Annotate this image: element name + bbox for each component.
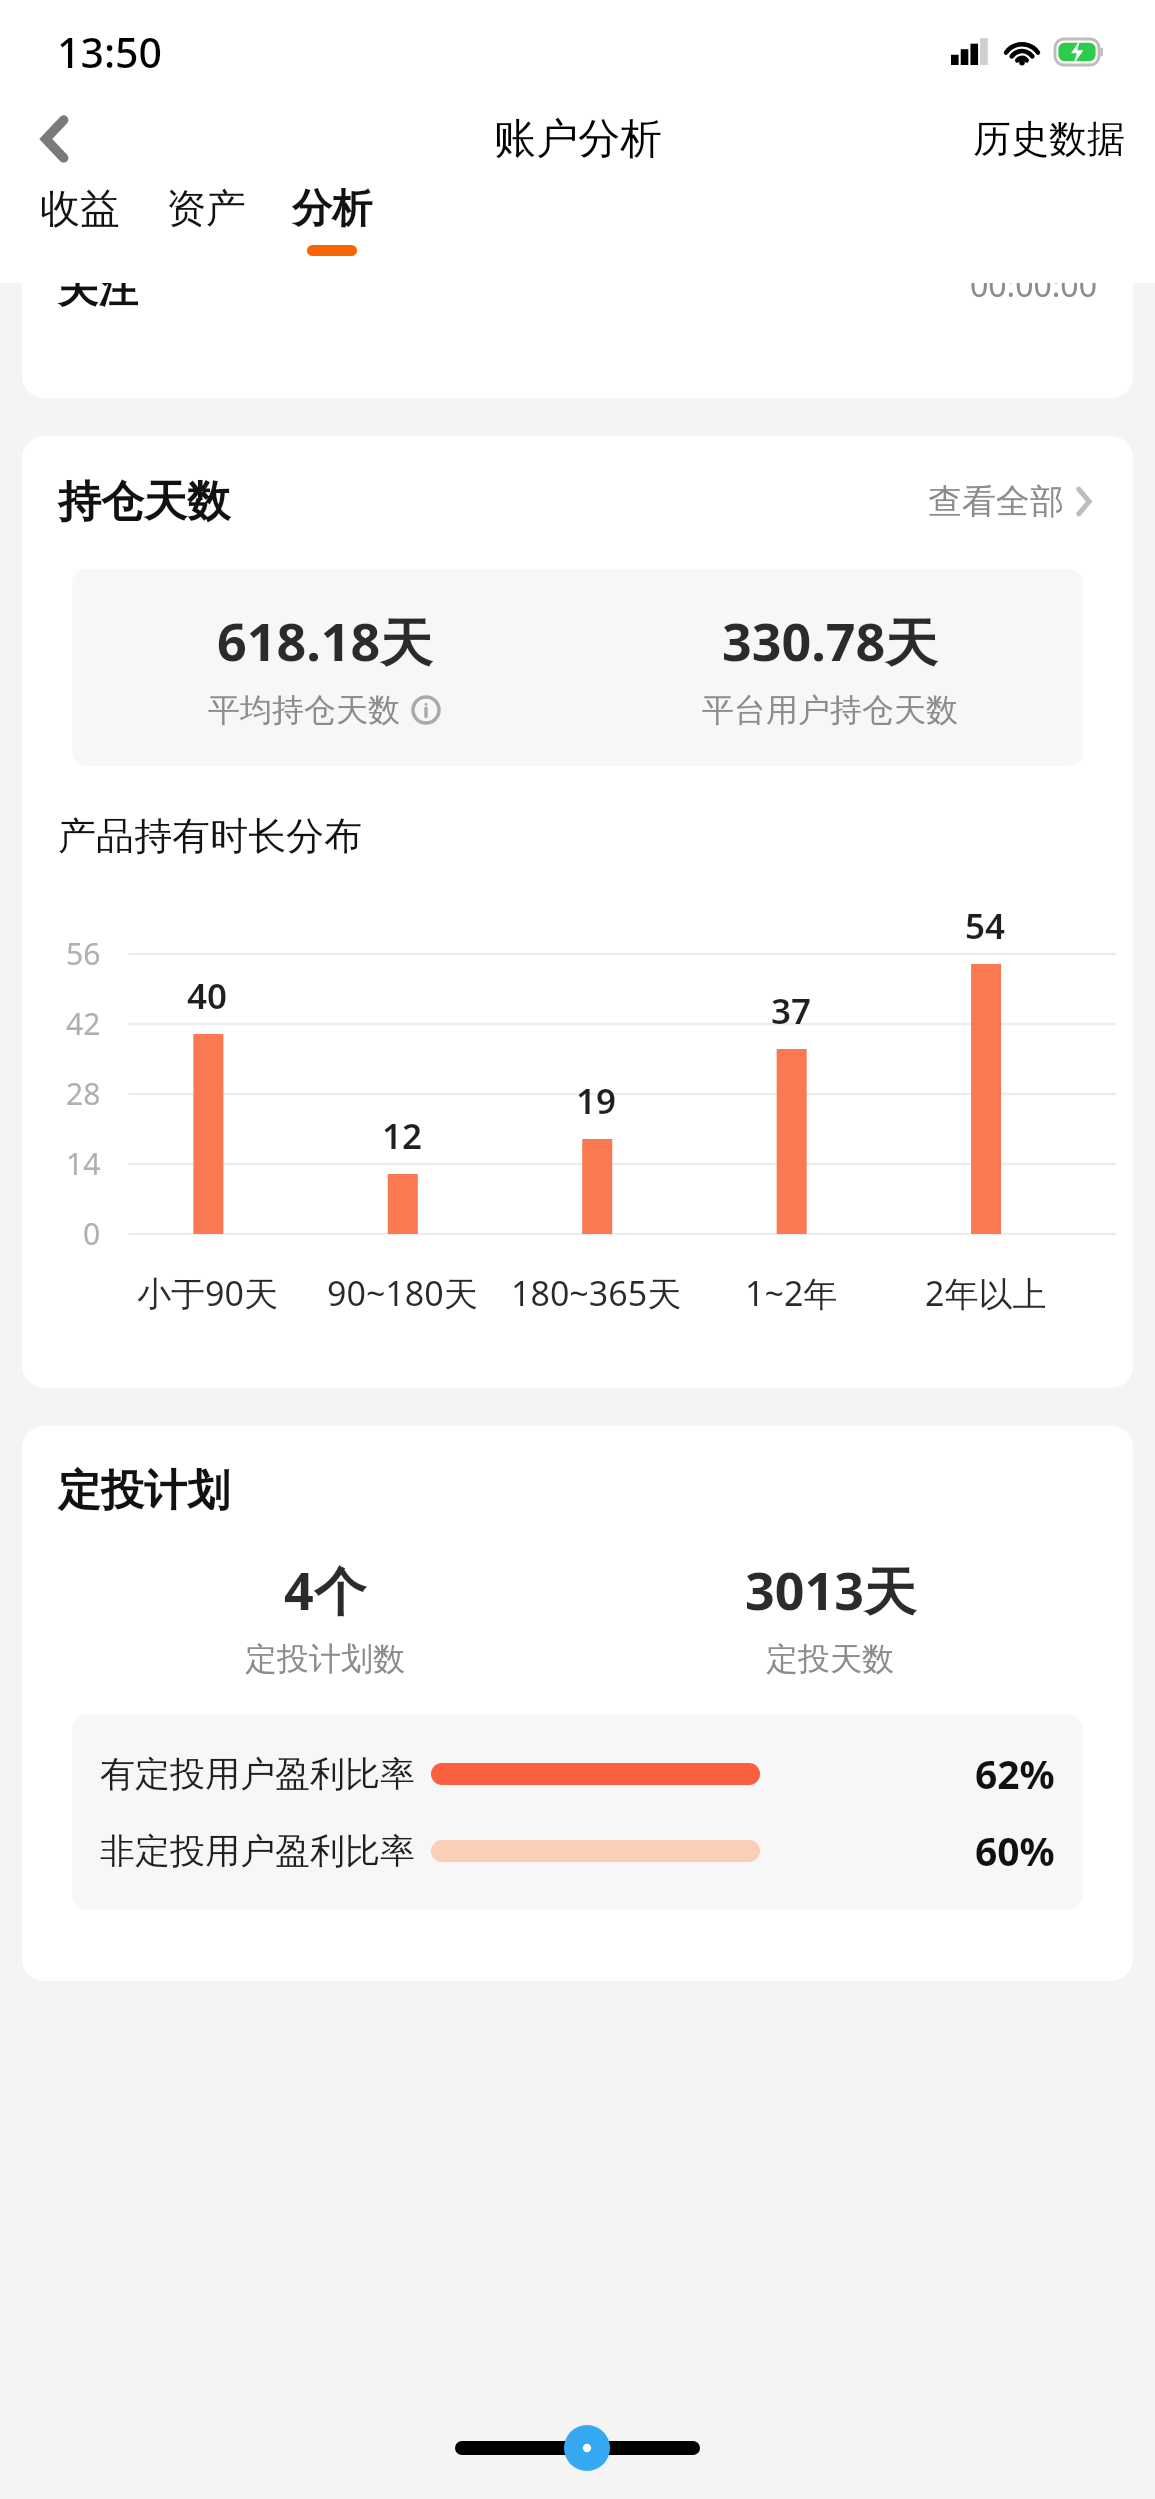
button[interactable]: 历史数据 bbox=[943, 95, 1155, 183]
staticText: 19 bbox=[576, 1077, 617, 1125]
staticText: 历史数据 bbox=[973, 115, 1125, 163]
staticText: 2年以上 bbox=[925, 1270, 1047, 1316]
staticText: 618.18天 bbox=[217, 605, 433, 676]
staticText: 0 bbox=[83, 1213, 101, 1254]
button[interactable]: 查看全部 bbox=[922, 474, 1097, 529]
staticText: 查看全部 bbox=[928, 480, 1064, 523]
staticText: 分析 bbox=[292, 183, 372, 233]
staticText: 平均持仓天数 bbox=[208, 690, 400, 730]
button[interactable]: 收益 bbox=[34, 183, 126, 256]
staticText: 收益 bbox=[40, 183, 120, 233]
button[interactable]: 资产 bbox=[160, 183, 252, 256]
staticText: 14 bbox=[66, 1143, 101, 1184]
button[interactable]: 分析 bbox=[286, 183, 378, 256]
staticText: 12 bbox=[382, 1112, 423, 1160]
staticText: 4个 bbox=[284, 1554, 366, 1625]
staticText: 28 bbox=[66, 1073, 101, 1114]
staticText: 180~365天 bbox=[511, 1270, 682, 1316]
button[interactable]: Back bbox=[0, 95, 108, 183]
staticText: 账户分析 bbox=[494, 113, 662, 166]
staticText: 56 bbox=[66, 933, 101, 974]
staticText: 330.78天 bbox=[722, 605, 938, 676]
staticText: 定投计划数 bbox=[245, 1639, 405, 1679]
staticText: 37 bbox=[771, 987, 812, 1035]
staticText: 40 bbox=[187, 972, 228, 1020]
staticText: 42 bbox=[66, 1003, 101, 1044]
staticText: 持仓天数 bbox=[58, 475, 230, 529]
staticText: 关注 bbox=[58, 283, 138, 313]
staticText: 1~2年 bbox=[745, 1270, 838, 1316]
staticText: 定投计划 bbox=[58, 1464, 230, 1518]
staticText: 平台用户持仓天数 bbox=[702, 690, 958, 730]
staticText: 有定投用户盈利比率 bbox=[100, 1752, 415, 1796]
staticText: 非定投用户盈利比率 bbox=[100, 1829, 415, 1873]
other: Info bbox=[411, 695, 441, 725]
staticText: 3013天 bbox=[745, 1554, 916, 1625]
staticText: 13:50 bbox=[57, 24, 162, 80]
staticText: 定投天数 bbox=[766, 1639, 894, 1679]
staticText: 62% bbox=[975, 1747, 1055, 1800]
staticText: 产品持有时长分布 bbox=[58, 812, 362, 860]
staticText: 00:00:00 bbox=[970, 283, 1097, 307]
staticText: 90~180天 bbox=[327, 1270, 478, 1316]
staticText: 54 bbox=[965, 902, 1006, 950]
staticText: 资产 bbox=[166, 183, 246, 233]
staticText: 60% bbox=[975, 1824, 1055, 1877]
staticText: 小于90天 bbox=[137, 1270, 278, 1316]
